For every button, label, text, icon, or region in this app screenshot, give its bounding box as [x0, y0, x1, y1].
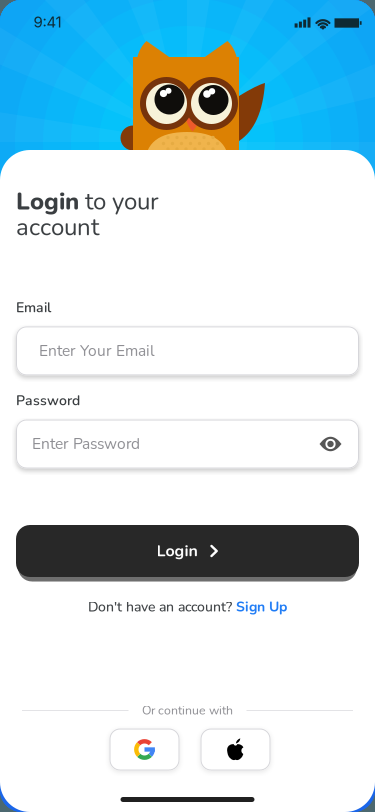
- button[interactable]: Sign Up: [236, 597, 287, 617]
- staticText: Enter Your Email: [39, 340, 155, 361]
- staticText: Sign Up: [236, 597, 287, 617]
- staticText: Login: [16, 185, 79, 218]
- staticText: to your: [79, 185, 159, 218]
- staticText: Login: [156, 540, 197, 562]
- button[interactable]: Enter Your Email: [16, 326, 359, 375]
- staticText: account: [16, 211, 99, 244]
- staticText: Email: [16, 298, 51, 317]
- button[interactable]: [109, 728, 179, 770]
- staticText: Enter Password: [32, 433, 140, 454]
- staticText: Password: [16, 391, 80, 410]
- button[interactable]: Login: [16, 525, 359, 577]
- button[interactable]: [200, 728, 270, 770]
- button[interactable]: Enter Password: [16, 419, 359, 468]
- staticText: Don't have an account?: [88, 597, 232, 617]
- staticText: 9:41: [33, 13, 61, 31]
- staticText: Or continue with: [142, 702, 233, 719]
